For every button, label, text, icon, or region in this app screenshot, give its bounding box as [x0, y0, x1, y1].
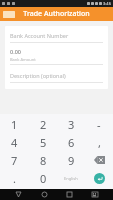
button[interactable]: Description (optional) [5, 68, 108, 89]
staticText: 3:46 [103, 1, 111, 6]
staticText: 6 [68, 135, 75, 150]
button[interactable]: Recent apps [62, 189, 76, 200]
button[interactable]: . [0, 169, 29, 187]
staticText: 7 [11, 153, 18, 168]
button[interactable]: 7 [0, 151, 29, 169]
button[interactable]: Change language [57, 169, 85, 187]
button[interactable]: Bank Account Number [5, 26, 108, 46]
staticText: 1 [11, 117, 18, 132]
button[interactable]: 4 [0, 133, 29, 151]
staticText: Description (optional) [10, 72, 66, 79]
button[interactable]: , [85, 133, 113, 151]
staticText: 2 [40, 117, 47, 132]
button[interactable]: Backspace [85, 151, 113, 169]
staticText: Bank Account Number [10, 32, 69, 39]
button[interactable]: Home [37, 189, 51, 200]
button[interactable]: 2 [29, 116, 57, 133]
button[interactable]: 8 [29, 151, 57, 169]
button[interactable]: 6 [57, 133, 85, 151]
staticText: 3 [68, 117, 75, 132]
button[interactable]: 3 [57, 116, 85, 133]
button[interactable]: 0 [29, 169, 57, 187]
button[interactable]: Enter [85, 169, 113, 187]
staticText: Trade Authorization [23, 9, 90, 19]
staticText: English [64, 176, 78, 181]
staticText: 8 [40, 153, 47, 168]
button[interactable]: 0.00 [5, 46, 108, 68]
button[interactable]: Back [11, 189, 25, 200]
staticText: 9 [68, 153, 75, 168]
button[interactable]: - [85, 116, 113, 133]
button[interactable]: 9 [57, 151, 85, 169]
staticText: . [13, 171, 16, 186]
staticText: , [98, 135, 101, 150]
staticText: - [97, 117, 101, 132]
staticText: 0.00 [10, 48, 21, 55]
staticText: 5 [40, 135, 47, 150]
staticText: 0 [40, 171, 47, 186]
staticText: 4 [11, 135, 18, 150]
button[interactable]: 5 [29, 133, 57, 151]
staticText: Bank Amount [10, 57, 36, 62]
button[interactable]: Switch keyboard [88, 189, 102, 200]
button[interactable]: 1 [0, 116, 29, 133]
